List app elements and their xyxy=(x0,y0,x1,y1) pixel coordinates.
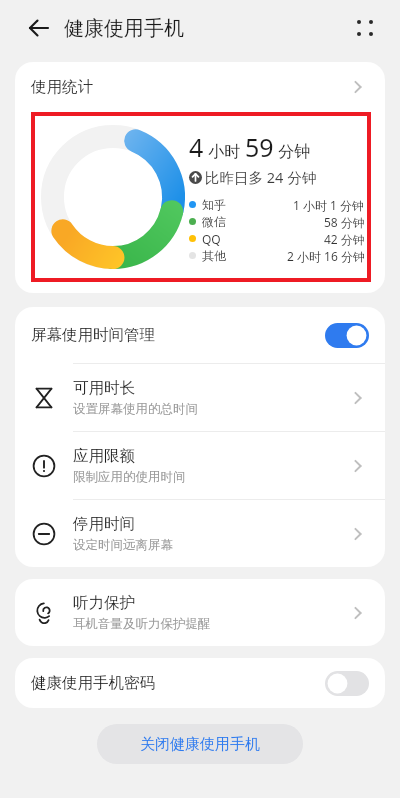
staticText: 微信 xyxy=(202,214,226,229)
button[interactable]: On xyxy=(325,323,369,348)
staticText: 2 小时 16 分钟 xyxy=(287,248,365,264)
staticText: 屏幕使用时间管理 xyxy=(31,325,155,345)
staticText: 健康使用手机密码 xyxy=(31,673,155,693)
button[interactable]: Back xyxy=(22,11,56,45)
staticText: 关闭健康使用手机 xyxy=(140,735,260,754)
staticText: 设置屏幕使用的总时间 xyxy=(73,401,198,417)
button[interactable]: 关闭健康使用手机 xyxy=(97,724,303,764)
button[interactable]: Off xyxy=(325,671,369,696)
staticText: 设定时间远离屏幕 xyxy=(73,537,173,553)
staticText: 1 小时 1 分钟 xyxy=(293,197,365,213)
staticText: 知乎 xyxy=(202,197,226,212)
staticText: 分钟 xyxy=(274,140,311,162)
staticText: 可用时长 xyxy=(73,378,135,398)
staticText: 4 xyxy=(189,130,204,164)
staticText: 使用统计 xyxy=(31,77,93,97)
staticText: 耳机音量及听力保护提醒 xyxy=(73,616,211,632)
button[interactable]: 停用时间 xyxy=(15,500,385,567)
staticText: 应用限额 xyxy=(73,446,135,466)
button[interactable]: 可用时长 xyxy=(15,364,385,431)
staticText: 小时 xyxy=(204,140,245,162)
button[interactable]: 听力保护 xyxy=(15,579,385,646)
staticText: 限制应用的使用时间 xyxy=(73,469,186,485)
staticText: 停用时间 xyxy=(73,514,135,534)
button[interactable]: More options xyxy=(348,11,382,45)
staticText: 59 xyxy=(245,130,274,164)
staticText: 健康使用手机 xyxy=(64,16,184,41)
staticText: 42 分钟 xyxy=(324,231,365,247)
button[interactable]: 应用限额 xyxy=(15,432,385,499)
button[interactable]: 使用统计 xyxy=(15,62,385,112)
staticText: 其他 xyxy=(202,248,226,263)
button[interactable]: 屏幕使用时间管理 xyxy=(15,307,385,363)
staticText: 58 分钟 xyxy=(324,214,365,230)
button[interactable]: 健康使用手机密码 xyxy=(15,658,385,708)
staticText: QQ xyxy=(202,231,221,247)
staticText: 听力保护 xyxy=(73,593,135,613)
staticText: 比昨日多 24 分钟 xyxy=(205,167,317,187)
